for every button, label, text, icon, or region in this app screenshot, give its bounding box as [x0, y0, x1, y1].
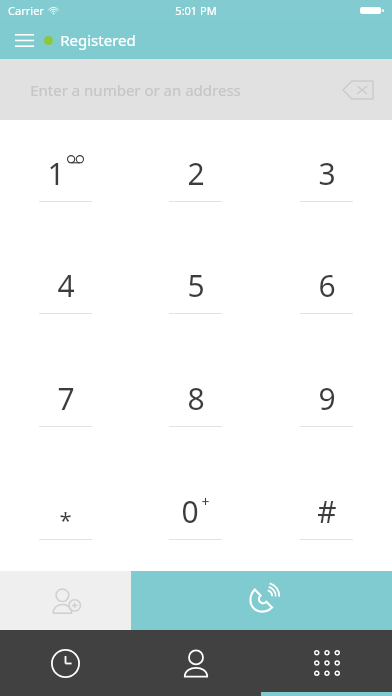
button[interactable]: Add contact [0, 571, 131, 630]
staticText: + [201, 492, 210, 511]
staticText: 9 [318, 378, 336, 419]
button[interactable]: 0 [130, 458, 261, 571]
button[interactable]: 4 [0, 232, 130, 345]
staticText: 1 [47, 153, 65, 194]
button[interactable]: 5 [130, 232, 261, 345]
button[interactable]: 3 [261, 120, 392, 232]
staticText: * [59, 504, 72, 534]
button[interactable]: Contacts [130, 630, 261, 696]
staticText: Carrier [8, 3, 44, 18]
button[interactable]: 9 [261, 345, 392, 458]
button[interactable]: # [261, 458, 392, 571]
staticText: 3 [318, 153, 336, 194]
button[interactable]: Call [131, 571, 392, 630]
button[interactable]: 1 [0, 120, 130, 232]
staticText: 2 [187, 153, 205, 194]
button[interactable]: 2 [130, 120, 261, 232]
button[interactable]: Backspace [336, 70, 380, 110]
button[interactable]: Keypad [261, 630, 392, 696]
button[interactable]: 6 [261, 232, 392, 345]
staticText: 8 [187, 378, 205, 419]
staticText: 6 [318, 265, 336, 306]
staticText: 5 [187, 265, 205, 306]
staticText: 7 [57, 378, 75, 419]
button[interactable]: Recents [0, 630, 130, 696]
staticText: Registered [60, 30, 136, 50]
button[interactable]: * [0, 458, 130, 571]
staticText: 4 [57, 265, 75, 306]
button[interactable]: Menu [6, 22, 42, 58]
staticText: Enter a number or an address [30, 80, 241, 100]
staticText: 0 [181, 491, 199, 532]
staticText: # [317, 491, 337, 532]
button[interactable]: 7 [0, 345, 130, 458]
staticText: 5:01 PM [175, 3, 217, 18]
button[interactable]: 8 [130, 345, 261, 458]
